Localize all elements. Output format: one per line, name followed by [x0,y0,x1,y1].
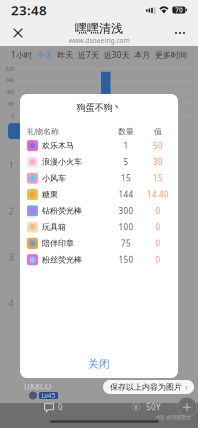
staticText: 4 [8,297,13,309]
staticText: 0 [58,402,63,412]
staticText: 近7天 [78,50,99,60]
staticText: 值 [154,127,162,136]
staticText: www.dsoaeing.com [68,36,129,45]
staticText: 160 [5,88,14,96]
button[interactable]: 昨天 [57,50,73,60]
staticText: 14.40 [147,189,169,200]
staticText: 30 [153,157,163,167]
staticText: ¥ [134,403,138,412]
staticText: 小风车 [42,173,66,183]
staticText: 浪漫小火车 [42,157,82,167]
button[interactable]: Add [176,396,198,418]
staticText: 数量 [118,127,134,136]
staticText: 5 [123,157,128,167]
staticText: 糖果 [42,190,58,199]
staticText: 300 [118,205,133,216]
button[interactable]: More [166,20,194,46]
staticText: 50Y [146,402,161,412]
button[interactable]: 今天 [37,50,53,60]
staticText: 75 [121,238,131,249]
staticText: 狗蛋不狗丶 [76,102,121,113]
staticText: 欢乐木马 [42,141,74,150]
staticText: 23:48 [11,1,47,19]
staticText: 0 [155,205,160,216]
staticText: 4倍 命理观看左 [156,414,191,421]
staticText: 240 [5,77,14,84]
staticText: 今天 [37,50,53,60]
button[interactable]: 保存以上内容为图片 [103,380,194,394]
staticText: 0 [155,238,160,249]
staticText: 80 [8,100,14,107]
staticText: 70 [175,6,183,14]
button[interactable]: ¥ [131,400,161,414]
staticText: 1 [123,140,128,151]
staticText: 150 [118,254,133,265]
staticText: 粉丝荧光棒 [42,255,82,265]
staticText: 本月 [134,50,150,60]
staticText: 3 [8,251,13,263]
staticText: 2 [8,205,13,217]
button[interactable]: 本月 [134,50,150,60]
staticText: 1小时 [11,50,32,60]
staticText: 1 [8,159,13,171]
staticText: 玩具箱 [42,222,66,232]
button[interactable]: 更多时间 [155,50,187,60]
staticText: 陪伴印章 [42,238,74,248]
staticText: 100 [118,222,133,232]
button[interactable]: Close [4,20,32,46]
staticText: 0 [155,222,160,232]
staticText: 320 [5,65,14,72]
button[interactable]: 近30天 [104,50,130,60]
staticText: 0 [155,254,160,265]
staticText: 15 [121,173,131,183]
staticText: TIK8CO [23,381,51,392]
staticText: 关闭 [88,357,110,370]
staticText: 钻粉荧光棒 [42,206,82,216]
staticText: 0 [11,112,14,119]
staticText: 50 [153,140,163,151]
staticText: › [185,382,187,392]
button[interactable]: 关闭 [20,350,178,378]
staticText: 昨天 [57,50,73,60]
staticText: 近30天 [104,50,130,60]
staticText: 保存以上内容为图片 [110,382,182,392]
staticText: Lv45 [41,391,55,400]
staticText: 嘿嘿清浅 [75,21,123,36]
staticText: 15 [153,173,163,183]
staticText: 礼物名称 [27,127,59,136]
button[interactable]: 近7天 [78,50,99,60]
button[interactable]: 1小时 [11,50,32,60]
staticText: 更多时间 [155,50,187,60]
staticText: 144 [118,189,133,200]
button[interactable]: 0 [44,400,63,414]
